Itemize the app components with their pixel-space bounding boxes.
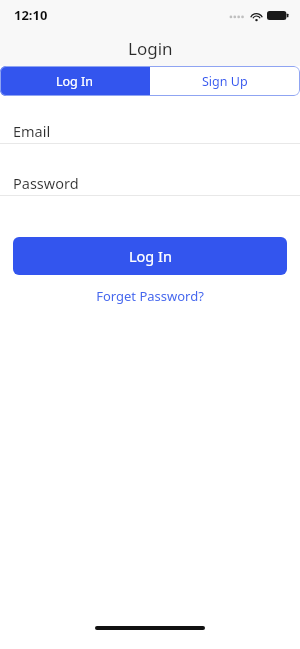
staticText: Login [128, 37, 173, 60]
staticText: Forget Password? [96, 287, 204, 305]
staticText: Email [13, 121, 51, 141]
button[interactable]: Sign Up [150, 66, 300, 96]
button[interactable]: Log In [13, 237, 287, 275]
button[interactable]: Email [0, 118, 300, 143]
staticText: Log In [129, 246, 172, 266]
staticText: Password [13, 173, 79, 193]
staticText: 12:10 [14, 6, 48, 24]
staticText: Sign Up [202, 73, 248, 90]
staticText: Log In [56, 73, 94, 90]
button[interactable]: Log In [0, 66, 150, 96]
button[interactable]: Password [0, 170, 300, 195]
button[interactable]: Forget Password? [0, 283, 300, 309]
